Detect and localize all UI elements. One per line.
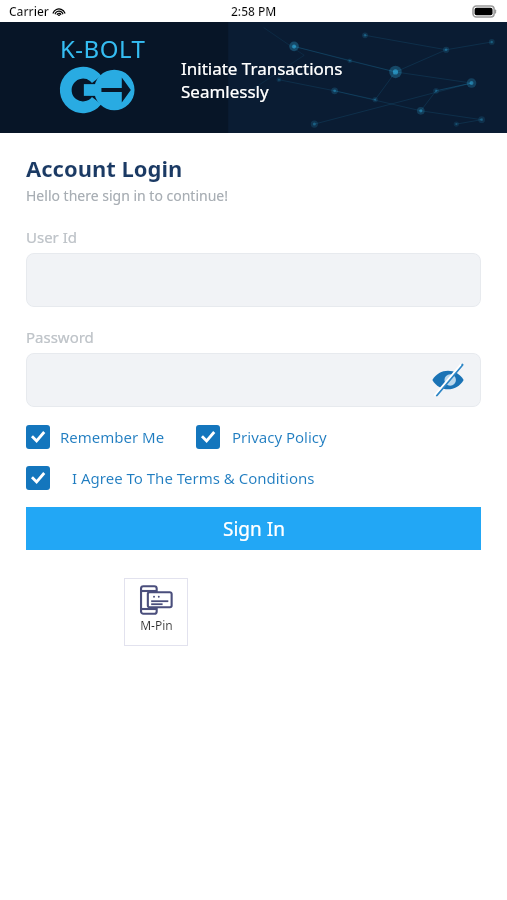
button[interactable]: I Agree To The Terms & Conditions [26, 466, 315, 490]
staticText: 2:58 PM [231, 3, 277, 19]
button[interactable]: Remember Me [26, 425, 165, 449]
staticText: Privacy Policy [232, 427, 327, 447]
staticText: User Id [26, 227, 78, 247]
button[interactable]: Show password [431, 368, 465, 392]
staticText: Carrier [9, 3, 49, 19]
staticText: Hello there sign in to continue! [26, 186, 229, 205]
button[interactable]: Sign In [26, 507, 481, 550]
staticText: Password [26, 327, 94, 347]
button[interactable]: Privacy Policy [196, 425, 327, 449]
staticText: Account Login [26, 153, 183, 183]
button[interactable]: Show password [26, 353, 481, 407]
staticText: Sign In [223, 516, 285, 542]
button[interactable]: M-Pin [124, 578, 188, 646]
staticText: Seamlessly [181, 80, 269, 103]
staticText: I Agree To The Terms & Conditions [72, 468, 315, 488]
staticText: K-BOLT [60, 32, 146, 65]
staticText: Initiate Transactions [181, 57, 343, 80]
staticText: Remember Me [60, 427, 165, 447]
staticText: M-Pin [140, 617, 173, 633]
